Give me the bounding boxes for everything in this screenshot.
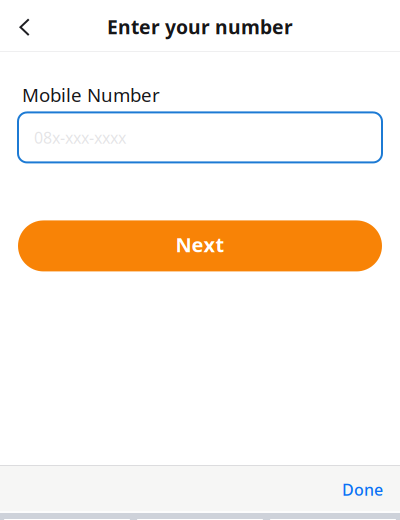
staticText: 08x-xxx-xxxx: [34, 126, 126, 148]
staticText: Next: [175, 231, 224, 258]
button[interactable]: Next: [18, 220, 382, 271]
staticText: Mobile Number: [22, 82, 160, 107]
staticText: Enter your number: [107, 13, 293, 40]
staticText: Done: [342, 479, 383, 500]
button[interactable]: Back: [0, 3, 44, 47]
button[interactable]: Done: [342, 465, 400, 512]
button[interactable]: Mobile Number text field: [18, 112, 382, 162]
